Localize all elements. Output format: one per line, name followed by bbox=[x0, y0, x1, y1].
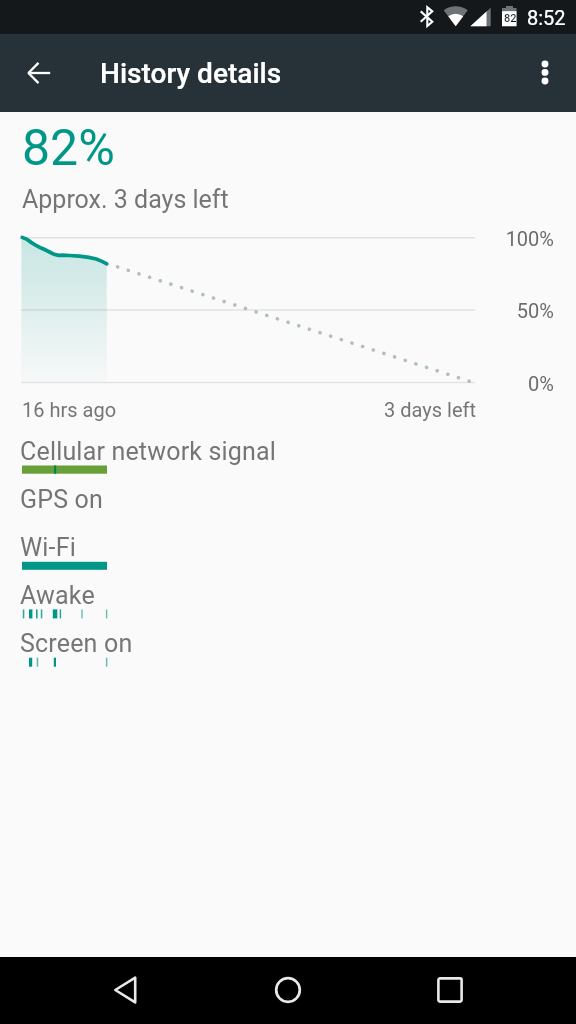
staticText: Wi-Fi bbox=[20, 533, 76, 562]
button[interactable]: GPS on bbox=[0, 477, 576, 523]
staticText: GPS on bbox=[20, 485, 103, 514]
staticText: 100% bbox=[454, 227, 554, 250]
button[interactable]: Back bbox=[102, 966, 150, 1014]
button[interactable]: Recent apps bbox=[426, 966, 474, 1014]
staticText: Screen on bbox=[20, 629, 133, 658]
button[interactable]: Awake bbox=[0, 573, 576, 619]
button[interactable]: Cellular network signal bbox=[0, 429, 576, 475]
staticText: Awake bbox=[20, 581, 95, 610]
staticText: History details bbox=[100, 57, 282, 90]
staticText: Approx. 3 days left bbox=[22, 185, 229, 214]
staticText: 82% bbox=[22, 119, 115, 178]
staticText: 0% bbox=[454, 372, 554, 395]
button[interactable]: Navigate up bbox=[15, 49, 63, 97]
staticText: 82 bbox=[504, 12, 517, 25]
staticText: Cellular network signal bbox=[20, 437, 277, 466]
button[interactable]: More options bbox=[521, 49, 569, 97]
staticText: 50% bbox=[454, 299, 554, 322]
button[interactable]: Wi-Fi bbox=[0, 525, 576, 571]
button[interactable]: Screen on bbox=[0, 621, 576, 667]
staticText: 16 hrs ago bbox=[22, 398, 117, 421]
staticText: 8:52 bbox=[527, 6, 566, 29]
button[interactable]: Home bbox=[264, 966, 312, 1014]
staticText: 3 days left bbox=[316, 398, 476, 421]
